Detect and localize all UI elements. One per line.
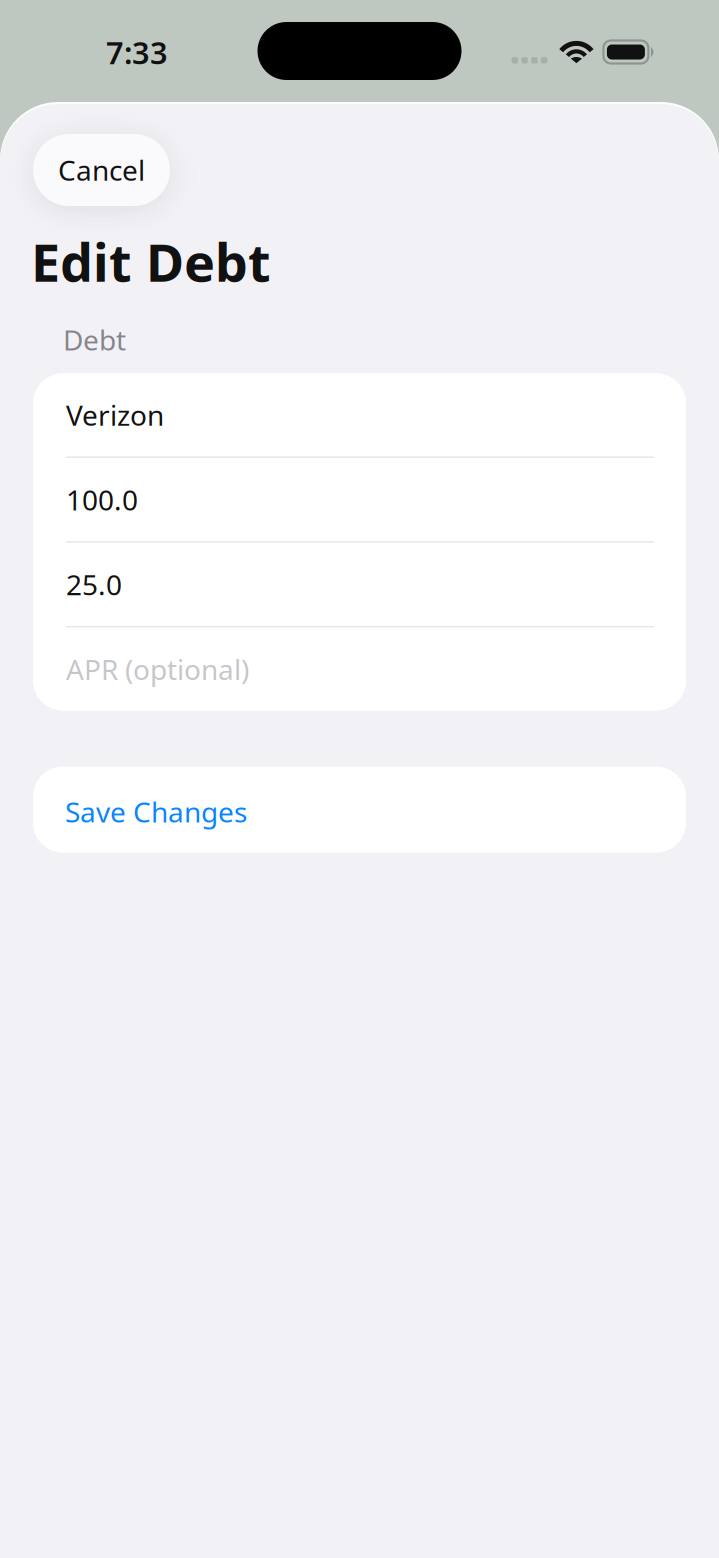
staticText: 7:33 (106, 32, 168, 73)
staticText: Save Changes (65, 793, 247, 830)
button[interactable]: Cancel (33, 134, 170, 206)
staticText: Verizon (66, 396, 164, 433)
staticText: Edit Debt (31, 227, 271, 296)
staticText: APR (optional) (66, 650, 249, 688)
staticText: Cancel (58, 151, 145, 189)
staticText: Debt (63, 321, 126, 358)
staticText: 100.0 (66, 481, 138, 518)
button[interactable]: Save Changes (33, 767, 686, 853)
staticText: 25.0 (66, 566, 122, 603)
